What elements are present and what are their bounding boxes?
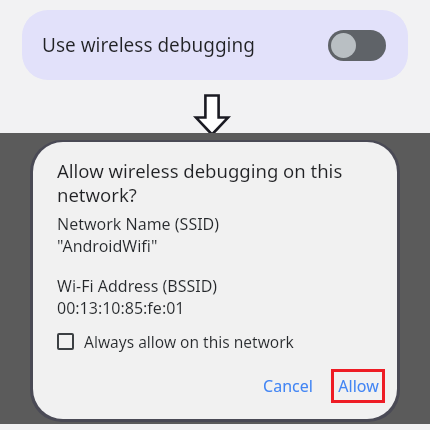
staticText: 00:13:10:85:fe:01 [57,297,185,319]
staticText: Allow [338,375,379,397]
button[interactable]: Always allow on this network [57,331,294,352]
staticText: Wi-Fi Address (BSSID) [57,275,218,297]
button[interactable]: Allow [334,372,382,400]
button[interactable]: Toggle wireless debugging [328,30,386,61]
staticText: Cancel [263,375,313,397]
staticText: Allow wireless debugging on this network… [57,158,343,207]
staticText: "AndroidWifi" [57,235,158,257]
staticText: Network Name (SSID) [57,213,220,235]
staticText: Always allow on this network [84,331,294,352]
staticText: Use wireless debugging [42,32,255,58]
button[interactable]: Use wireless debugging [22,10,408,80]
button[interactable]: Cancel [251,369,325,403]
